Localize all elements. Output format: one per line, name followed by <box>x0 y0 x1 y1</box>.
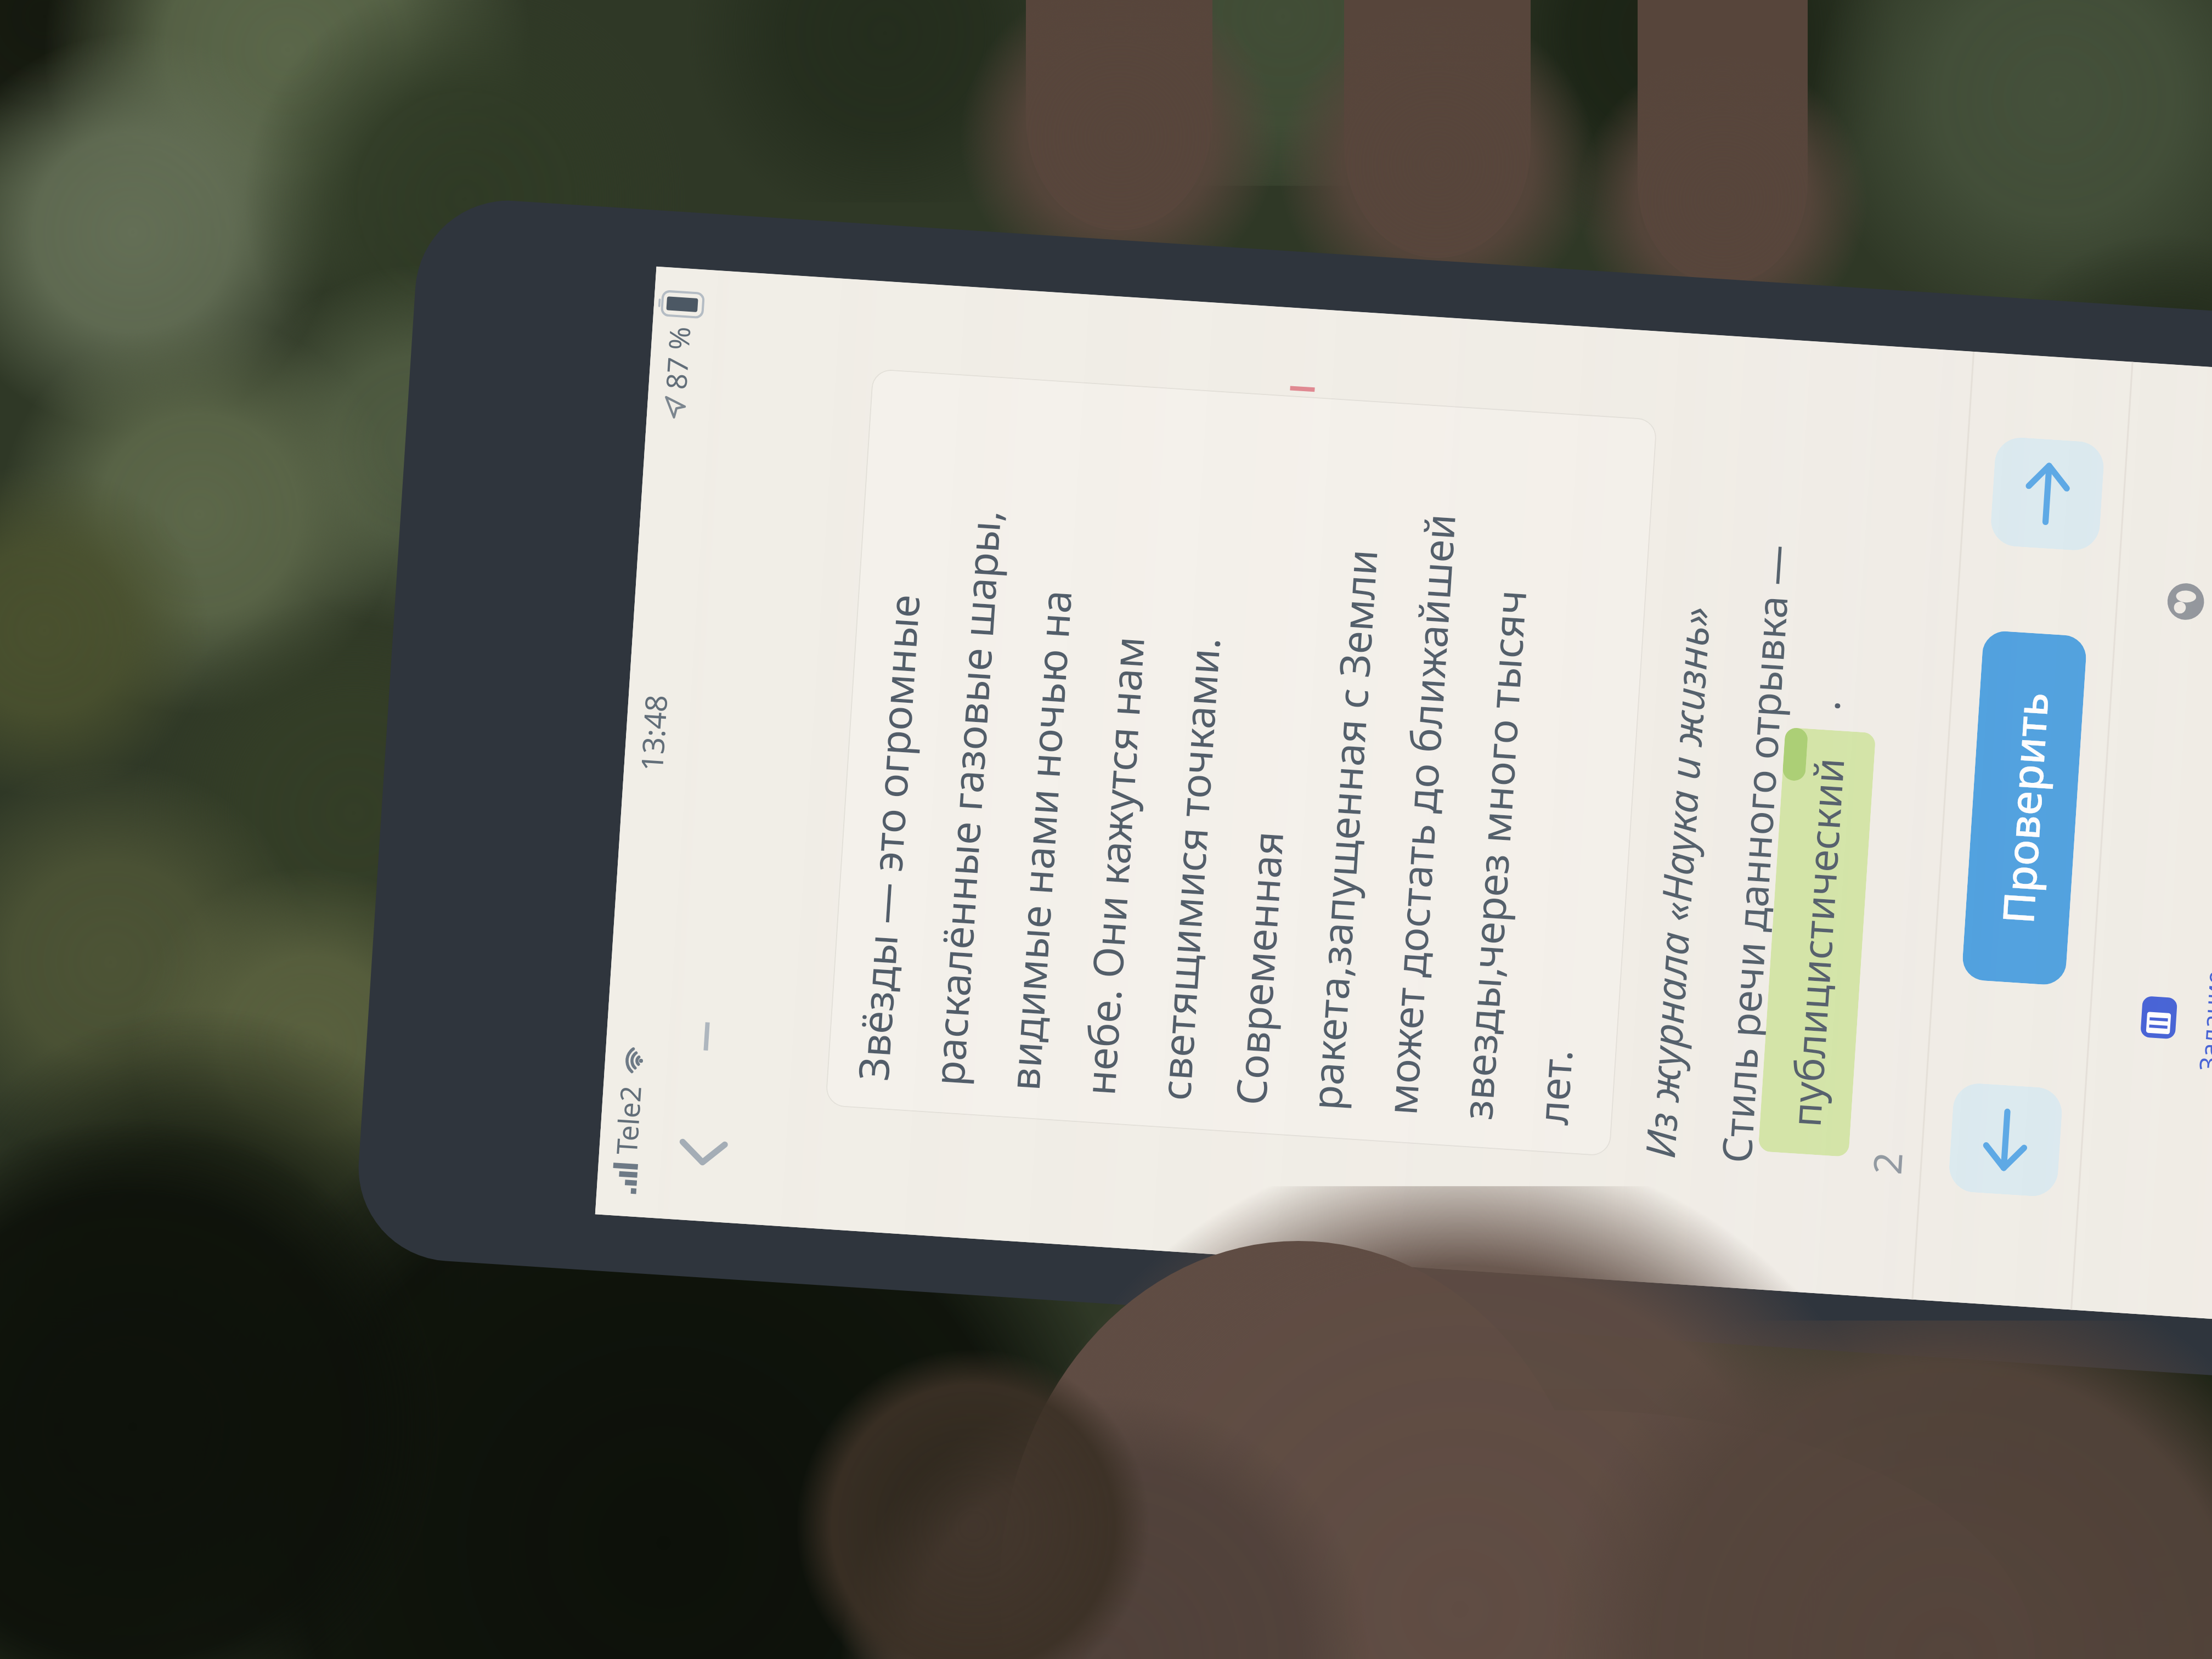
button[interactable]: Звёзды — это огромные раскалённые газовы… <box>825 369 1657 1157</box>
button[interactable]: Задание <box>2119 910 2212 1129</box>
staticText: 87 % <box>656 325 699 391</box>
staticText: публицистический <box>1777 756 1857 1129</box>
staticText: Задание <box>2191 969 2212 1072</box>
staticText: 13:48 <box>631 693 676 772</box>
staticText: 2 <box>1860 1150 1914 1176</box>
staticText: Tele2 <box>607 1084 650 1156</box>
button[interactable]: Ещё <box>2161 577 2210 626</box>
button[interactable]: Задание <box>2135 993 2183 1042</box>
button[interactable]: Предыдущее задание <box>1948 1082 2063 1198</box>
staticText: Проверить <box>1988 690 2062 926</box>
button[interactable]: Ещё <box>2146 494 2212 713</box>
staticText: . <box>1796 697 1852 712</box>
button[interactable]: Назад <box>662 1111 744 1194</box>
button[interactable]: Проверить <box>1961 630 2087 986</box>
button[interactable]: публицистический <box>1758 727 1876 1157</box>
button[interactable]: Следующее задание <box>1989 436 2105 552</box>
staticText: Стиль речи данного отрывка — <box>1708 542 1803 1165</box>
staticText: Из журнала «Наука и жизнь» <box>1632 604 1723 1160</box>
staticText: Звёзды — это огромные раскалённые газовы… <box>844 386 1625 1126</box>
